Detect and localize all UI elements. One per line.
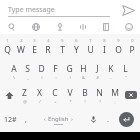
- button[interactable]: D: [34, 59, 48, 83]
- button[interactable]: K: [104, 59, 118, 83]
- staticText: W: [17, 44, 25, 56]
- staticText: 8: [103, 38, 106, 43]
- staticText: 0: [131, 38, 134, 43]
- staticText: T: [60, 44, 65, 56]
- button[interactable]: Z: [17, 83, 32, 107]
- button[interactable]: 9: [111, 34, 125, 59]
- staticText: 3: [33, 38, 36, 43]
- button[interactable]: V: [62, 83, 77, 107]
- button[interactable]: 12#: [1, 107, 19, 132]
- staticText: V: [67, 87, 73, 99]
- staticText: S: [25, 63, 30, 75]
- staticText: :: [55, 75, 57, 80]
- staticText: ;: [114, 99, 116, 104]
- staticText: ,: [25, 115, 27, 125]
- button[interactable]: Backspace: [122, 83, 139, 107]
- staticText: I: [103, 44, 106, 56]
- button[interactable]: Voice: [48, 20, 71, 34]
- staticText: 12#: [4, 115, 17, 125]
- staticText: N: [96, 87, 103, 99]
- button[interactable]: B: [77, 83, 92, 107]
- staticText: C: [52, 87, 58, 99]
- staticText: -: [110, 75, 112, 80]
- staticText: A: [11, 63, 17, 75]
- staticText: .: [107, 115, 109, 125]
- button[interactable]: 7: [83, 34, 97, 59]
- staticText: K: [108, 63, 114, 75]
- staticText: 9: [117, 38, 120, 43]
- staticText: ": [125, 75, 127, 80]
- button[interactable]: S: [20, 59, 34, 83]
- button[interactable]: .: [101, 107, 114, 132]
- button[interactable]: F: [48, 59, 62, 83]
- button[interactable]: 4: [41, 34, 55, 59]
- staticText: Z: [22, 87, 27, 99]
- staticText: 7: [89, 38, 92, 43]
- staticText: _: [27, 75, 29, 80]
- staticText: 5: [61, 38, 64, 43]
- staticText: ›: [71, 115, 73, 123]
- button[interactable]: ‹: [32, 107, 85, 132]
- button[interactable]: 0: [125, 34, 139, 59]
- button[interactable]: C: [47, 83, 62, 107]
- staticText: L: [123, 63, 128, 75]
- button[interactable]: Gallery: [94, 20, 117, 34]
- button[interactable]: 3: [27, 34, 41, 59]
- button[interactable]: Type message: [8, 3, 110, 16]
- button[interactable]: G: [62, 59, 76, 83]
- button[interactable]: L: [118, 59, 132, 83]
- button[interactable]: 6: [69, 34, 83, 59]
- staticText: !: [84, 99, 86, 104]
- button[interactable]: X: [32, 83, 47, 107]
- staticText: P: [129, 44, 135, 56]
- button[interactable]: Send: [116, 0, 140, 20]
- staticText: 1: [6, 38, 9, 43]
- staticText: /: [39, 99, 41, 104]
- staticText: E: [32, 44, 37, 56]
- staticText: G: [66, 63, 73, 75]
- staticText: J: [96, 63, 99, 75]
- button[interactable]: Voice input: [85, 107, 101, 132]
- staticText: ‹: [44, 115, 46, 123]
- staticText: D: [38, 63, 45, 75]
- staticText: (: [41, 75, 43, 80]
- button[interactable]: 8: [97, 34, 111, 59]
- staticText: H: [80, 63, 87, 75]
- staticText: #: [96, 75, 99, 80]
- staticText: Y: [74, 44, 79, 56]
- staticText: Type message: [8, 5, 55, 15]
- staticText: 6: [75, 38, 78, 43]
- staticText: ?: [99, 99, 101, 104]
- button[interactable]: Sticker: [0, 20, 24, 34]
- staticText: ): [69, 75, 71, 80]
- button[interactable]: Enter: [114, 107, 139, 132]
- button[interactable]: M: [107, 83, 122, 107]
- staticText: 2: [20, 38, 23, 43]
- staticText: Q: [4, 44, 11, 56]
- staticText: 4: [47, 38, 50, 43]
- button[interactable]: A: [7, 59, 20, 83]
- button[interactable]: 5: [55, 34, 69, 59]
- button[interactable]: Shift: [1, 83, 17, 107]
- staticText: B: [82, 87, 88, 99]
- button[interactable]: N: [92, 83, 107, 107]
- staticText: English: [48, 115, 69, 123]
- button[interactable]: Globe: [24, 20, 48, 34]
- button[interactable]: H: [76, 59, 90, 83]
- staticText: X: [37, 87, 42, 99]
- button[interactable]: Audio: [71, 20, 94, 34]
- button[interactable]: J: [90, 59, 104, 83]
- staticText: &: [82, 75, 85, 80]
- staticText: F: [53, 63, 58, 75]
- button[interactable]: 2: [14, 34, 27, 59]
- button[interactable]: 1: [1, 34, 14, 59]
- staticText: O: [115, 44, 122, 56]
- staticText: @: [23, 99, 27, 104]
- staticText: R: [45, 44, 51, 56]
- staticText: +: [54, 99, 57, 104]
- staticText: \: [13, 75, 15, 80]
- button[interactable]: ,: [19, 107, 32, 132]
- staticText: M: [111, 87, 119, 99]
- staticText: U: [87, 44, 94, 56]
- button[interactable]: Emoji: [117, 20, 140, 34]
